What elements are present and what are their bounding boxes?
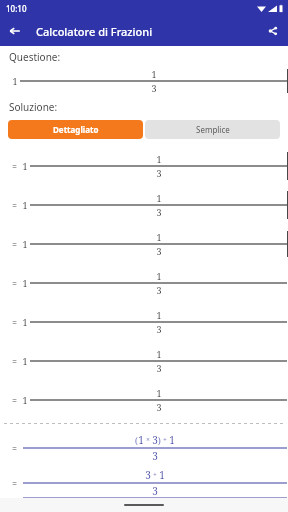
staticText: 1 [169, 433, 175, 447]
staticText: = [12, 199, 18, 211]
staticText: 1 [22, 160, 28, 172]
staticText: 3 [156, 245, 162, 257]
staticText: = [12, 355, 18, 367]
staticText: 10:10 [6, 3, 27, 14]
staticText: × [146, 435, 150, 445]
staticText: = [12, 277, 18, 289]
staticText: 3 [152, 484, 158, 498]
staticText: 3 [156, 362, 162, 374]
staticText: Questione: [9, 50, 61, 64]
button[interactable]: Semplice [145, 120, 280, 139]
staticText: 1 [22, 277, 28, 289]
button[interactable]: Back [0, 16, 30, 46]
staticText: 1 [156, 270, 162, 282]
staticText: 1 [138, 433, 144, 447]
staticText: 1 [159, 468, 165, 482]
staticText: ) [158, 435, 161, 446]
staticText: 1 [156, 387, 162, 399]
button[interactable]: Share [258, 16, 288, 46]
staticText: = [12, 238, 18, 250]
staticText: + [163, 435, 167, 445]
staticText: = [12, 442, 18, 454]
staticText: 1 [156, 192, 162, 204]
staticText: 1 [22, 394, 28, 406]
staticText: 3 [151, 82, 157, 94]
staticText: = [12, 160, 18, 172]
staticText: 3 [152, 433, 158, 447]
staticText: + [153, 470, 157, 480]
staticText: 1 [22, 355, 28, 367]
staticText: Soluzione: [9, 100, 58, 114]
staticText: 1 [22, 238, 28, 250]
button[interactable]: Dettagliato [8, 120, 143, 139]
staticText: 3 [156, 284, 162, 296]
staticText: 3 [156, 167, 162, 179]
staticText: ( [135, 435, 138, 446]
staticText: 1 [22, 316, 28, 328]
staticText: 1 [22, 199, 28, 211]
staticText: Semplice [196, 124, 230, 135]
staticText: 3 [156, 206, 162, 218]
staticText: 1 [156, 348, 162, 360]
staticText: 1 [156, 153, 162, 165]
staticText: = [12, 316, 18, 328]
staticText: 3 [145, 468, 151, 482]
staticText: 3 [152, 449, 158, 463]
staticText: 1 [12, 75, 18, 87]
staticText: = [12, 394, 18, 406]
staticText: 1 [156, 309, 162, 321]
staticText: 1 [151, 68, 157, 80]
staticText: Dettagliato [53, 124, 99, 135]
staticText: 3 [156, 401, 162, 413]
staticText: 3 [156, 323, 162, 335]
staticText: = [12, 477, 18, 489]
staticText: 1 [156, 231, 162, 243]
staticText: Calcolatore di Frazioni [36, 24, 258, 39]
